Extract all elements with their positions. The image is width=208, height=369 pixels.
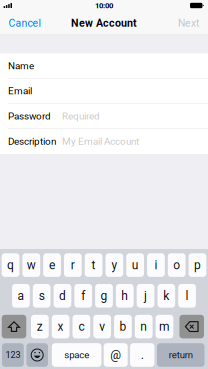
button[interactable]: f [74, 284, 92, 308]
staticText: c [78, 320, 84, 334]
button[interactable]: d [54, 284, 71, 308]
staticText: z [37, 320, 43, 334]
staticText: l [186, 289, 189, 303]
button[interactable]: Emoji [26, 343, 48, 367]
button[interactable]: o [168, 253, 185, 277]
staticText: o [173, 258, 180, 272]
button[interactable]: l [178, 284, 196, 308]
staticText: u [132, 258, 139, 272]
staticText: My Email Account [62, 136, 139, 147]
staticText: return [169, 349, 193, 361]
button[interactable]: @ [104, 343, 128, 367]
staticText: Description [8, 136, 56, 147]
button[interactable]: j [137, 284, 154, 308]
staticText: space [64, 349, 89, 361]
button[interactable]: Shift [2, 315, 26, 338]
button[interactable]: v [93, 315, 111, 338]
staticText: Cancel [8, 17, 41, 29]
button[interactable]: e [43, 253, 61, 277]
staticText: a [17, 289, 24, 303]
button[interactable]: t [85, 253, 102, 277]
button[interactable]: Email [0, 79, 208, 104]
staticText: t [92, 258, 96, 272]
button[interactable]: x [52, 315, 69, 338]
staticText: q [7, 258, 14, 272]
button[interactable]: y [105, 253, 123, 277]
button[interactable]: u [126, 253, 144, 277]
staticText: e [49, 258, 55, 272]
button[interactable]: g [95, 284, 113, 308]
staticText: n [140, 320, 147, 334]
button[interactable]: s [33, 284, 50, 308]
button[interactable]: k [157, 284, 175, 308]
button[interactable]: i [147, 253, 165, 277]
button[interactable]: a [12, 284, 30, 308]
button[interactable]: r [64, 253, 82, 277]
button[interactable]: Next [172, 11, 208, 35]
staticText: New Account [71, 17, 137, 29]
staticText: Email [8, 85, 32, 97]
staticText: Required [62, 110, 100, 122]
staticText: b [119, 320, 126, 334]
button[interactable]: z [31, 315, 49, 338]
staticText: w [27, 258, 36, 272]
button[interactable]: q [2, 253, 19, 277]
button[interactable]: space [52, 343, 101, 367]
button[interactable]: . [130, 343, 154, 367]
staticText: Password [8, 110, 51, 122]
button[interactable]: m [156, 315, 173, 338]
staticText: 123 [5, 350, 20, 360]
staticText: h [121, 289, 128, 303]
staticText: p [194, 258, 201, 272]
button[interactable]: Description [0, 129, 208, 154]
staticText: d [59, 289, 66, 303]
staticText: Next [178, 17, 199, 29]
button[interactable]: 123 [2, 343, 24, 367]
button[interactable]: w [22, 253, 40, 277]
staticText: k [163, 289, 169, 303]
staticText: i [154, 258, 157, 272]
button[interactable]: Delete [179, 315, 204, 338]
staticText: s [39, 289, 45, 303]
staticText: Name [8, 60, 34, 72]
button[interactable]: Name [0, 54, 208, 79]
staticText: y [111, 258, 117, 272]
button[interactable]: Password [0, 104, 208, 129]
button[interactable]: h [116, 284, 134, 308]
button[interactable]: c [72, 315, 90, 338]
button[interactable]: return [157, 343, 204, 367]
button[interactable]: p [189, 253, 206, 277]
button[interactable]: n [135, 315, 152, 338]
staticText: x [58, 320, 64, 334]
staticText: . [141, 348, 144, 362]
button[interactable]: Cancel [0, 11, 47, 35]
staticText: v [99, 320, 105, 334]
staticText: 10:00 [95, 1, 113, 10]
staticText: g [100, 289, 107, 303]
button[interactable]: b [114, 315, 132, 338]
staticText: j [144, 289, 147, 303]
staticText: f [81, 289, 85, 303]
staticText: m [159, 320, 170, 334]
staticText: r [71, 258, 75, 272]
staticText: @ [110, 348, 121, 362]
